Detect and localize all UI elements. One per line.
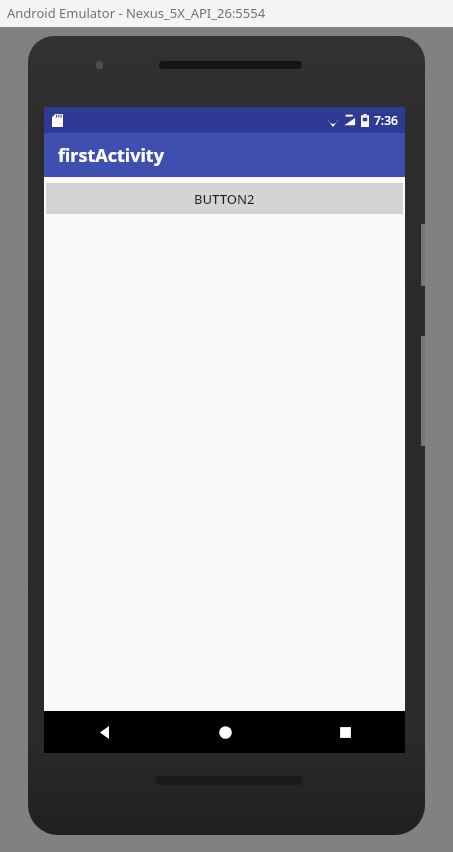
staticText: BUTTON2 [194,190,255,208]
button[interactable]: Home [165,711,285,753]
button[interactable]: Back [44,711,165,753]
staticText: 7:36 [374,112,398,128]
staticText: firstActivity [58,143,164,168]
button[interactable]: Recent apps [285,711,405,753]
staticText: Android Emulator - Nexus_5X_API_26:5554 [7,4,266,22]
button[interactable]: BUTTON2 [46,183,403,214]
